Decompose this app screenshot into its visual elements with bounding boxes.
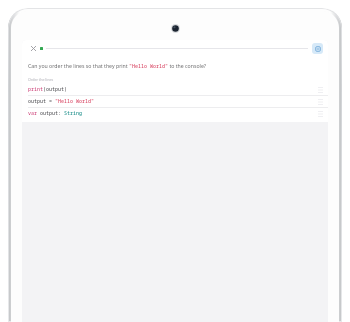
staticText: Can you order the lines so that they pri… xyxy=(28,62,207,69)
other: Reorder line xyxy=(318,99,323,105)
staticText: Order the lines xyxy=(28,77,54,82)
button[interactable]: Run code xyxy=(312,43,323,54)
staticText: print(output) xyxy=(28,86,68,93)
button[interactable]: var output: String xyxy=(22,108,328,119)
other: Reorder line xyxy=(318,87,323,93)
other: Reorder line xyxy=(318,111,323,117)
staticText: var output: String xyxy=(28,110,83,117)
button[interactable]: Close xyxy=(28,43,39,54)
staticText: output = "Hello World" xyxy=(28,98,95,105)
button[interactable]: output = "Hello World" xyxy=(22,96,328,107)
button[interactable]: print(output) xyxy=(22,84,328,95)
